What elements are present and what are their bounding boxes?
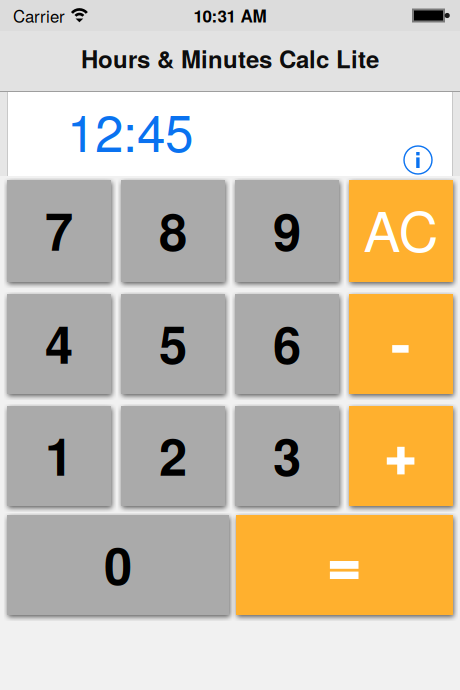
button[interactable]: 2 (121, 406, 225, 506)
button[interactable]: 3 (235, 406, 339, 506)
staticText: 8 (159, 194, 187, 266)
button[interactable]: 9 (235, 180, 339, 282)
staticText: 5 (159, 307, 187, 379)
staticText: Carrier (13, 3, 65, 28)
button[interactable]: 8 (121, 180, 225, 282)
button[interactable]: 0 (7, 515, 229, 615)
staticText: AC (363, 188, 438, 268)
staticText: 9 (273, 194, 301, 266)
button[interactable]: Info (401, 145, 435, 175)
button[interactable]: AC (349, 180, 453, 282)
staticText: 2 (159, 419, 187, 491)
staticText: 3 (273, 419, 301, 491)
button[interactable]: Equals (236, 515, 453, 615)
button[interactable]: 6 (235, 294, 339, 394)
staticText: 4 (45, 307, 73, 379)
button[interactable]: Plus (349, 406, 453, 506)
staticText: 6 (273, 307, 301, 379)
button[interactable]: 4 (7, 294, 111, 394)
button[interactable]: 7 (7, 180, 111, 282)
button[interactable]: Minus (349, 294, 453, 394)
staticText: 10:31 AM (193, 3, 266, 28)
staticText: 12:45 (67, 93, 193, 167)
staticText: 7 (45, 194, 73, 266)
staticText: 0 (104, 528, 132, 600)
staticText: Hours & Minutes Calc Lite (81, 41, 379, 76)
button[interactable]: 1 (7, 406, 111, 506)
button[interactable]: 5 (121, 294, 225, 394)
staticText: 1 (45, 419, 73, 491)
